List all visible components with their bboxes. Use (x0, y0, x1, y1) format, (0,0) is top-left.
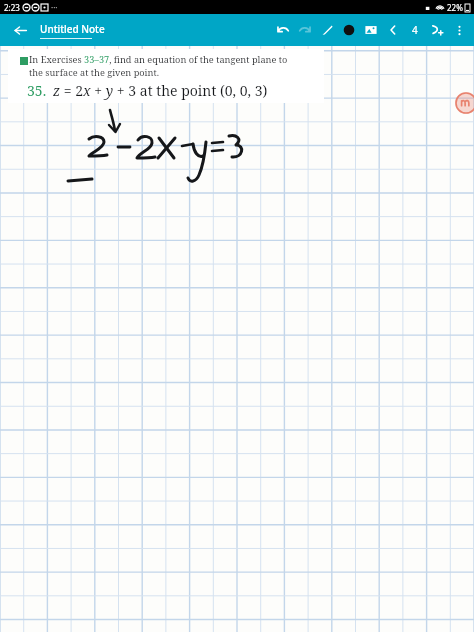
other: Badge (455, 92, 474, 114)
staticText: z = 2x + y + 3 at the point (0, 0, 3) (53, 81, 268, 100)
button[interactable]: Untitled Note (38, 22, 107, 39)
button[interactable]: Colour (338, 19, 360, 41)
staticText: Untitled Note (40, 22, 105, 36)
button[interactable]: Previous page (382, 19, 404, 41)
button[interactable]: 4 (404, 19, 426, 41)
button[interactable]: Pen (316, 19, 338, 41)
staticText: 22% (447, 2, 463, 13)
staticText: 35. (27, 81, 47, 100)
button[interactable]: Next page (426, 19, 448, 41)
button[interactable]: Redo (294, 19, 316, 41)
staticText: 2:23 (4, 2, 20, 13)
button[interactable]: Insert image (360, 19, 382, 41)
staticText: 4 (412, 23, 418, 37)
button[interactable]: Undo (272, 19, 294, 41)
button[interactable]: More options (448, 19, 470, 41)
button[interactable]: Back (9, 19, 31, 41)
staticText: ··· (51, 2, 58, 13)
staticText: In Exercises 33–37, find an equation of … (29, 53, 288, 79)
